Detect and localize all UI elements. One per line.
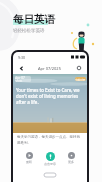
staticText: Your times to Exist to Care, we don't ex… [16,87,82,105]
button[interactable]: Share [75,64,83,72]
staticText: 重听 [26,160,32,164]
staticText: Apr 07/2025 [38,66,61,71]
button[interactable]: Back [17,64,25,72]
button[interactable]: Play [21,152,37,164]
staticText: 每日英语 [13,13,55,26]
button[interactable]: Apr 07 2025 [15,76,31,82]
staticText: 9:30 [18,55,25,60]
button[interactable]: 中英对照 [75,77,86,81]
staticText: Apr 07 2025 [15,76,31,82]
staticText: 更多 [68,160,74,164]
staticText: 每天学习英语，每天进步一点点。坚持就是胜利。 [17,135,83,145]
staticText: 中英对照 [75,78,86,81]
button[interactable]: Record [42,152,58,166]
button[interactable]: More [63,152,79,164]
staticText: 点击录音 [44,162,56,166]
staticText: 轻轻松松学英语 [13,28,45,34]
